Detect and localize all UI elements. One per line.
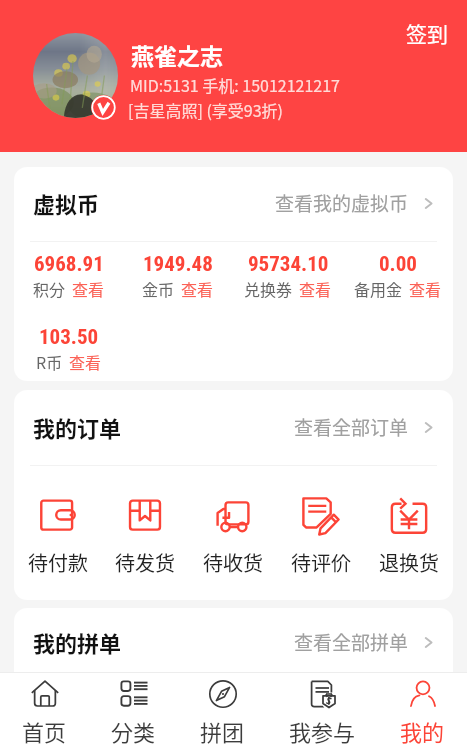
staticText: 103.50 — [39, 325, 99, 350]
staticText: 我的拼单 — [33, 626, 122, 658]
button[interactable]: 待收货 — [189, 494, 277, 577]
staticText: 1949.48 — [143, 252, 213, 277]
staticText: 我参与 — [289, 715, 356, 747]
staticText: 查看 — [69, 350, 102, 373]
button[interactable]: 1949.48 — [123, 252, 233, 300]
staticText: 退换货 — [379, 548, 439, 577]
staticText: 我的 — [400, 715, 445, 747]
button[interactable]: 我的订单 — [14, 411, 453, 449]
staticText: 虚拟币 — [33, 187, 100, 219]
button[interactable]: 虚拟币 — [14, 187, 453, 225]
button[interactable]: 103.50 — [14, 325, 124, 373]
staticText: 查看全部拼单 — [294, 628, 409, 656]
staticText: 查看全部订单 — [294, 413, 409, 441]
button[interactable]: 分类 — [111, 673, 156, 752]
staticText: 拼团 — [200, 715, 245, 747]
staticText: 金币 — [142, 277, 175, 300]
staticText: 积分 — [33, 277, 66, 300]
staticText: 我的订单 — [33, 411, 122, 443]
button[interactable]: 待发货 — [101, 494, 189, 577]
button[interactable]: 退换货 — [365, 494, 453, 577]
staticText: 备用金 — [354, 277, 403, 300]
staticText: R币 — [36, 350, 63, 373]
button[interactable]: 首页 — [22, 673, 67, 752]
staticText: 查看 — [72, 277, 105, 300]
button[interactable]: 拼团 — [200, 673, 245, 752]
button[interactable]: 95734.10 — [233, 252, 343, 300]
button[interactable]: 我的拼单 — [14, 626, 453, 664]
button[interactable]: 签到 — [396, 8, 458, 58]
button[interactable]: 我的 — [400, 673, 445, 752]
staticText: 0.00 — [379, 252, 417, 277]
staticText: 首页 — [22, 715, 67, 747]
staticText: 查看我的虚拟币 — [275, 189, 409, 217]
staticText: 签到 — [406, 18, 448, 48]
staticText: 查看 — [181, 277, 214, 300]
button[interactable]: 待评价 — [277, 494, 365, 577]
button[interactable]: 6968.91 — [14, 252, 123, 300]
staticText: 查看 — [299, 277, 332, 300]
button[interactable]: 我参与 — [289, 673, 356, 752]
staticText: 兑换券 — [244, 277, 293, 300]
staticText: MID:5131 手机: 15012121217 — [130, 73, 390, 96]
staticText: 查看 — [409, 277, 442, 300]
staticText: 待收货 — [203, 548, 263, 577]
button[interactable]: 0.00 — [343, 252, 453, 300]
staticText: 95734.10 — [248, 252, 329, 277]
staticText: 分类 — [111, 715, 156, 747]
staticText: 待评价 — [291, 548, 351, 577]
staticText: 待发货 — [115, 548, 175, 577]
staticText: [吉星高照] (享受93折) — [128, 98, 388, 121]
button[interactable]: 待付款 — [14, 494, 101, 577]
staticText: 燕雀之志 — [131, 38, 371, 71]
staticText: 待付款 — [28, 548, 88, 577]
staticText: 6968.91 — [34, 252, 104, 277]
